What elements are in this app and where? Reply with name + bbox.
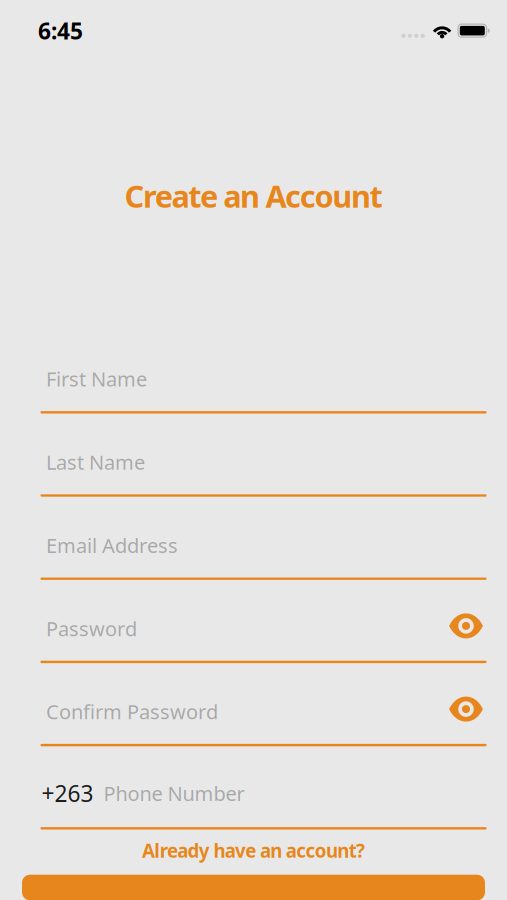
button[interactable]: Sign Up <box>22 875 485 900</box>
staticText: First Name <box>46 365 147 392</box>
button[interactable]: Already have an account? <box>0 838 507 863</box>
button[interactable]: Show Password <box>448 613 486 643</box>
staticText: Confirm Password <box>46 698 218 725</box>
button[interactable]: Confirm Password <box>40 698 486 781</box>
button[interactable]: Show Confirm Password <box>448 697 486 727</box>
staticText: Create an Account <box>124 176 383 216</box>
staticText: 6:45 <box>38 16 83 46</box>
staticText: Already have an account? <box>142 838 365 863</box>
staticText: +263 <box>41 778 93 808</box>
staticText: Password <box>46 615 137 642</box>
staticText: Phone Number <box>103 780 244 807</box>
staticText: Email Address <box>46 532 178 558</box>
button[interactable]: Email Address <box>40 532 486 615</box>
button[interactable]: +263 <box>40 781 486 865</box>
staticText: Last Name <box>46 449 145 475</box>
button[interactable]: First Name <box>40 365 486 449</box>
button[interactable]: Last Name <box>40 449 486 532</box>
button[interactable]: Password <box>40 615 486 698</box>
